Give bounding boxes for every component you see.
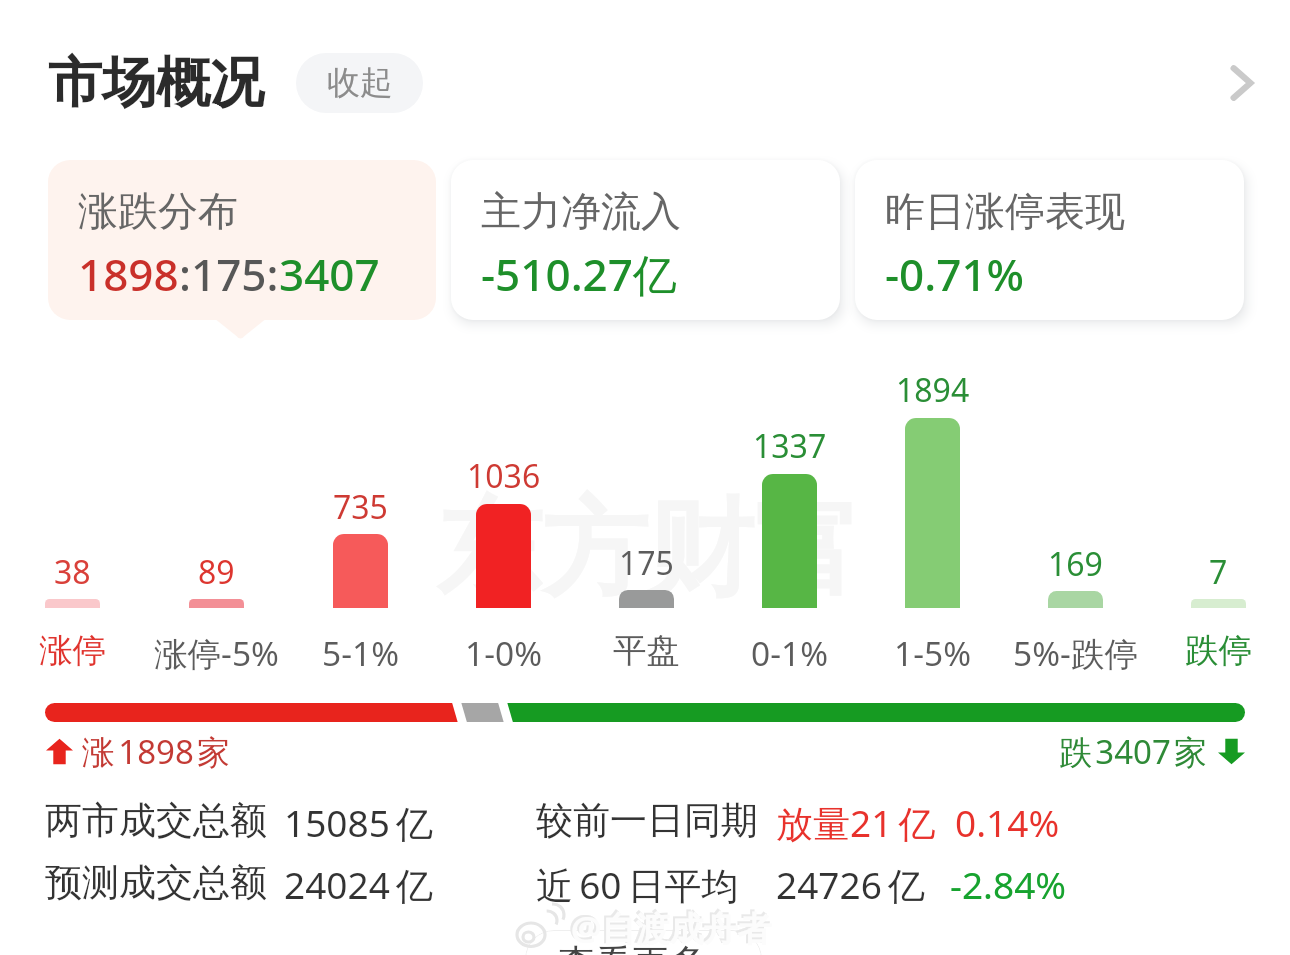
staticText: 1337 [753,424,827,468]
staticText: 跌 3407 家 [1059,729,1208,774]
button[interactable]: 1-5% 1894 [861,0,1004,955]
staticText: 两市成交总额 [45,797,267,844]
staticText: -510.27亿 [481,244,677,304]
staticText: 5%-跌停 [1013,630,1138,676]
staticText: 15085 亿 [284,797,433,848]
staticText: :175: [179,244,279,304]
staticText: 38 [54,550,91,594]
staticText: 主力净流入 [481,186,681,236]
button[interactable]: 昨日涨停表现 [855,160,1244,320]
button[interactable]: 0-1% 1337 [718,0,861,955]
staticText: 89 [198,550,235,594]
button[interactable]: 收起 [296,53,423,113]
staticText: 涨 1898 家 [82,729,231,774]
staticText: 涨停-5% [154,630,279,676]
staticText: 0-1% [751,630,828,676]
staticText: 平盘 [613,630,680,672]
staticText: 1036 [467,454,541,498]
staticText: 1-0% [465,630,542,676]
staticText: @自渡成舟者 [571,905,772,951]
staticText: 跌停 [1185,630,1252,672]
staticText: @自渡成舟者 [569,903,770,949]
staticText: 昨日涨停表现 [885,186,1125,236]
staticText: 东方财富 [436,483,860,617]
button[interactable]: Advance decline ratio [45,703,1245,722]
staticText: 收起 [327,62,393,104]
staticText: 放量21 亿 [776,797,936,848]
button[interactable]: 1-0% 1036 [432,0,575,955]
staticText: -2.84% [950,859,1067,909]
staticText: 24024 亿 [284,859,433,910]
staticText: 5-1% [322,630,399,676]
button[interactable]: 跌停 7 [1147,0,1290,955]
staticText: -0.71% [885,244,1025,304]
staticText: 735 [333,485,388,529]
staticText: 查看更多 [558,940,706,955]
button[interactable]: 查看更多 [525,930,762,955]
staticText: 预测成交总额 [45,859,267,906]
staticText: 1894 [896,368,970,412]
button[interactable]: 5%-跌停 169 [1004,0,1147,955]
staticText: 较前一日同期 [536,797,758,844]
button[interactable]: 5-1% 735 [288,0,432,955]
staticText: 市场概况 [48,49,264,117]
button[interactable]: 涨停 38 [0,0,144,955]
staticText: 175 [619,541,674,585]
staticText: 0.14% [955,797,1060,847]
staticText: 3407 [279,244,380,304]
button[interactable]: 涨停-5% 89 [144,0,288,955]
staticText: 24726 亿 [776,859,925,910]
staticText: 7 [1209,550,1228,594]
staticText: 169 [1048,542,1103,586]
staticText: 近 60 日平均 [536,859,739,910]
staticText: 1898 [78,244,179,304]
staticText: 1-5% [894,630,971,676]
button[interactable]: 主力净流入 [451,160,840,320]
button[interactable]: More [1195,38,1285,128]
button[interactable]: 平盘 175 [575,0,718,955]
button[interactable]: 涨跌分布 [48,160,436,320]
staticText: 涨跌分布 [78,186,238,236]
staticText: 涨停 [39,630,106,672]
